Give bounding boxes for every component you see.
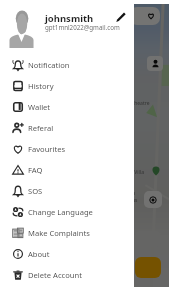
staticText: SOS	[28, 186, 43, 196]
staticText: o Villa	[130, 169, 145, 176]
staticText: History	[28, 81, 54, 91]
staticText: johnsmith	[45, 12, 94, 25]
button[interactable]: History	[0, 75, 134, 96]
staticText: Delete Account	[28, 270, 82, 280]
staticText: Referal	[28, 123, 54, 133]
button[interactable]: SOS	[0, 180, 134, 201]
staticText: Make Complaints	[28, 228, 90, 238]
staticText: Change Language	[28, 207, 93, 217]
button[interactable]: Profile	[147, 56, 163, 71]
button[interactable]: Wallet	[0, 96, 134, 117]
staticText: FAQ	[28, 165, 43, 175]
button[interactable]: Make Complaints	[0, 222, 134, 243]
button[interactable]: My location	[144, 191, 162, 208]
button[interactable]: Delete Account	[0, 264, 134, 285]
button[interactable]: Notification	[0, 54, 134, 75]
button[interactable]	[135, 257, 161, 278]
staticText: Favourites	[28, 144, 66, 154]
button[interactable]: Edit profile	[112, 8, 130, 26]
staticText: Wallet	[28, 102, 51, 112]
button[interactable]: FAQ	[0, 159, 134, 180]
staticText: on ous	[129, 190, 138, 203]
button[interactable]: Referal	[0, 117, 134, 138]
staticText: gpt1mnl2022@gmail.com	[45, 23, 120, 31]
button[interactable]: Favourites	[130, 7, 160, 25]
staticText: hitheatre	[128, 100, 150, 107]
button[interactable]: About	[0, 243, 134, 264]
button[interactable]: Change Language	[0, 201, 134, 222]
staticText: About	[28, 249, 50, 259]
staticText: Notification	[28, 60, 70, 70]
button[interactable]: Favourites	[0, 138, 134, 159]
